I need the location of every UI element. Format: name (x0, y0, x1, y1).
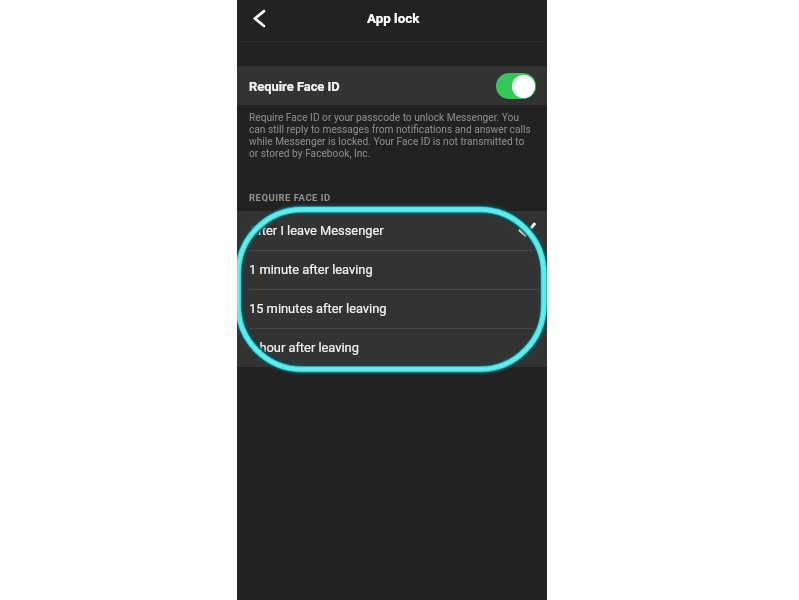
staticText: REQUIRE FACE ID (249, 192, 331, 203)
button[interactable]: 15 minutes after leaving (237, 289, 547, 328)
button[interactable]: After I leave Messenger (237, 211, 547, 250)
staticText: 15 minutes after leaving (249, 301, 387, 316)
button[interactable]: Back (240, 0, 277, 37)
staticText: Require Face ID or your passcode to unlo… (249, 112, 533, 160)
staticText: App lock (367, 11, 420, 27)
button[interactable]: 1 minute after leaving (237, 250, 547, 289)
other: Selected (518, 222, 536, 240)
staticText: 1 hour after leaving (249, 340, 359, 355)
button[interactable]: Require Face ID switch, on (496, 73, 536, 99)
staticText: After I leave Messenger (249, 223, 384, 238)
button[interactable]: Require Face ID (237, 66, 547, 105)
button[interactable]: 1 hour after leaving (237, 328, 547, 367)
staticText: Require Face ID (249, 79, 340, 94)
staticText: 1 minute after leaving (249, 262, 373, 277)
